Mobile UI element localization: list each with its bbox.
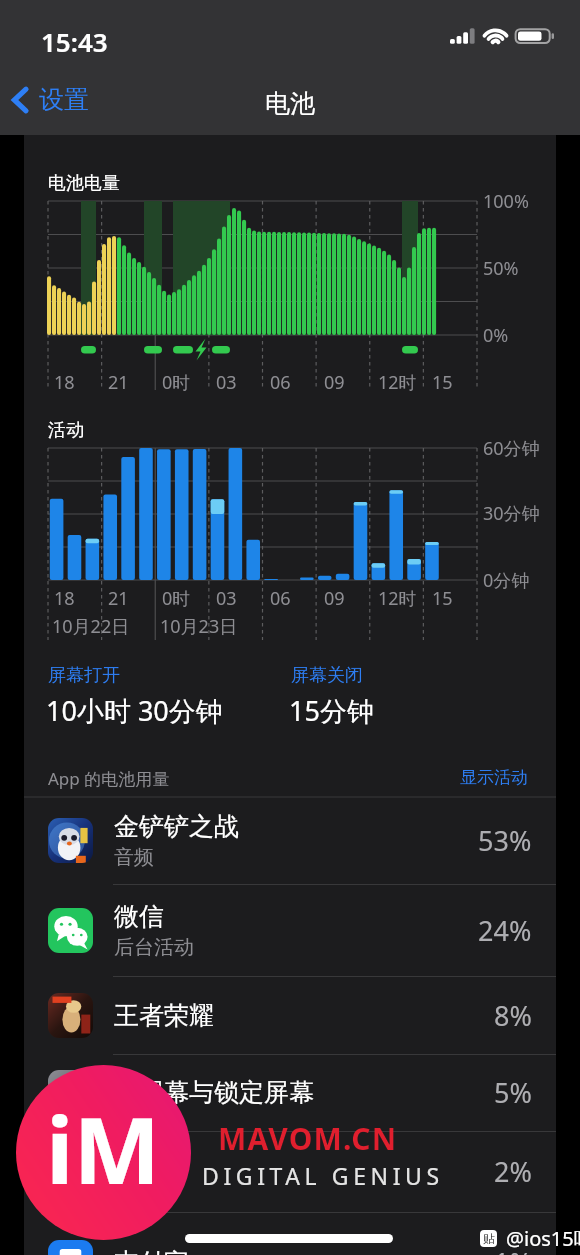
staticText: iM (46, 1086, 161, 1211)
staticText: App 的电池用量 (48, 767, 170, 790)
staticText: 10月22日 (52, 614, 130, 639)
staticText: 0时 (162, 586, 191, 611)
staticText: 0时 (162, 370, 191, 395)
staticText: 10月23日 (160, 614, 238, 639)
staticText: 屏幕关闭 (291, 664, 363, 687)
staticText: 2% (494, 1153, 532, 1190)
staticText: 支付宝 (114, 1247, 189, 1255)
other: Back (10, 85, 30, 115)
button[interactable]: 主屏幕与锁定屏幕 (0, 1054, 580, 1131)
staticText: 06 (270, 370, 291, 395)
staticText: 0% (483, 323, 509, 348)
staticText: 21 (108, 586, 129, 611)
staticText: 18 (54, 370, 75, 395)
button[interactable]: 设置 (0, 1131, 580, 1212)
staticText: 15分钟 (289, 692, 374, 729)
staticText: 主屏幕与锁定屏幕 (114, 1077, 314, 1108)
staticText: 音频 (114, 845, 154, 870)
staticText: 24% (478, 912, 532, 949)
staticText: 电池 (265, 88, 315, 119)
button[interactable]: 王者荣耀 (0, 976, 580, 1054)
staticText: 15 (432, 370, 453, 395)
staticText: 15 (432, 586, 453, 611)
staticText: 50% (483, 256, 519, 281)
staticText: 设置 (114, 1156, 164, 1187)
button[interactable]: 微信 (0, 884, 580, 976)
staticText: 12时 (378, 370, 417, 395)
staticText: 03 (216, 586, 237, 611)
staticText: 电池电量 (48, 172, 120, 195)
staticText: 30分钟 (483, 501, 540, 526)
staticText: MAVOM.CN (218, 1118, 398, 1159)
staticText: 微信 (114, 901, 164, 932)
staticText: 王者荣耀 (114, 1000, 214, 1031)
staticText: 09 (324, 586, 345, 611)
staticText: 09 (324, 370, 345, 395)
staticText: @ios15吧 (506, 1225, 580, 1252)
staticText: 屏幕打开 (48, 664, 120, 687)
staticText: 5% (494, 1074, 532, 1111)
staticText: 03 (216, 370, 237, 395)
staticText: 53% (478, 822, 532, 859)
button[interactable]: 金铲铲之战 (0, 797, 580, 884)
staticText: DIGITAL GENIUS (202, 1160, 444, 1191)
staticText: 0分钟 (483, 568, 530, 593)
staticText: 设置 (39, 84, 89, 115)
button[interactable]: 显示活动 (456, 763, 532, 792)
staticText: 后台活动 (114, 935, 194, 960)
staticText: 活动 (48, 419, 84, 442)
staticText: 10小时 30分钟 (46, 692, 223, 729)
staticText: 06 (270, 586, 291, 611)
staticText: 显示活动 (460, 767, 528, 788)
staticText: 金铲铲之战 (114, 811, 239, 842)
staticText: 1% (494, 1244, 532, 1255)
staticText: 8% (494, 997, 532, 1034)
staticText: 12时 (378, 586, 417, 611)
button[interactable]: Back (6, 80, 93, 119)
staticText: 18 (54, 586, 75, 611)
staticText: 60分钟 (483, 436, 540, 461)
staticText: 100% (483, 189, 529, 214)
button[interactable]: 支付宝 (0, 1212, 580, 1255)
staticText: 贴 (483, 1231, 495, 1246)
staticText: 15:43 (41, 24, 108, 59)
staticText: 21 (108, 370, 129, 395)
